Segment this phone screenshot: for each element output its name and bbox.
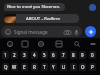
staticText: 6 (52, 52, 55, 58)
staticText: O (81, 64, 85, 70)
button[interactable]: O (79, 63, 86, 71)
staticText: 4 (33, 52, 36, 58)
staticText: R (33, 64, 36, 70)
button[interactable]: W (11, 63, 18, 71)
button[interactable]: 8 (70, 51, 77, 59)
staticText: 5 (43, 52, 46, 58)
button[interactable]: 6 (50, 51, 57, 59)
staticText: Y (52, 64, 55, 70)
staticText: 8 (72, 52, 75, 58)
button[interactable]: Emoji (4, 38, 16, 50)
button[interactable]: 2 (11, 51, 18, 59)
button[interactable]: U (60, 63, 67, 71)
staticText: Nice to meet you Shannon. (7, 4, 61, 10)
button[interactable]: Search (71, 38, 83, 50)
button[interactable]: 0 (89, 51, 96, 59)
button[interactable]: 4 (31, 51, 38, 59)
button[interactable]: T (41, 63, 48, 71)
staticText: P (91, 64, 94, 70)
staticText: Q (4, 64, 8, 70)
staticText: 0 (91, 52, 94, 58)
button[interactable]: Stickers (19, 38, 31, 50)
button[interactable]: Add attachment (85, 26, 96, 37)
staticText: 2 (13, 52, 16, 58)
button[interactable]: 5 (41, 51, 48, 59)
staticText: I (73, 64, 75, 70)
staticText: 3 (23, 52, 26, 58)
staticText: W (12, 64, 17, 70)
button[interactable]: 3 (21, 51, 28, 59)
button[interactable]: Q (2, 63, 9, 71)
button[interactable]: 9 (79, 51, 86, 59)
button[interactable]: 1 (2, 51, 9, 59)
staticText: E (23, 64, 26, 70)
button[interactable]: R (31, 63, 38, 71)
button[interactable]: E (21, 63, 28, 71)
staticText: 7 (62, 52, 65, 58)
button[interactable]: Y (50, 63, 57, 71)
staticText: 1 (4, 52, 7, 58)
button[interactable]: Contact avatar (89, 4, 96, 11)
staticText: ABOUT – Redfern (26, 16, 60, 22)
button[interactable]: Signal message (1, 26, 82, 37)
button[interactable]: Backspace (87, 38, 99, 50)
button[interactable]: Nice to meet you Shannon. (4, 3, 65, 11)
button[interactable]: Symbols (53, 38, 65, 50)
button[interactable]: ABOUT – Redfern (4, 14, 79, 23)
button[interactable]: I (70, 63, 77, 71)
button[interactable]: 7 (60, 51, 67, 59)
button[interactable]: GIFs (35, 38, 47, 50)
staticText: U (62, 64, 66, 70)
staticText: T (43, 64, 46, 70)
staticText: 9 (81, 52, 84, 58)
staticText: Signal message (14, 29, 48, 35)
button[interactable]: P (89, 63, 96, 71)
